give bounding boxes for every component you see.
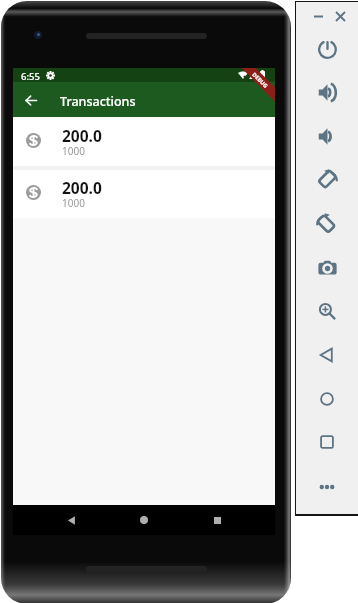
staticText: 200.0 xyxy=(62,177,102,198)
button[interactable]: Back xyxy=(56,505,86,535)
button[interactable]: More xyxy=(315,475,339,499)
button[interactable]: Home xyxy=(129,505,159,535)
button[interactable]: Recents xyxy=(202,505,232,535)
staticText: DEBUG xyxy=(251,71,270,89)
button[interactable]: 200.0 xyxy=(13,170,275,218)
button[interactable]: Minimize xyxy=(310,8,326,24)
staticText: 1000 xyxy=(62,196,85,210)
staticText: 6:55 xyxy=(21,70,40,83)
staticText: Transactions xyxy=(60,93,136,110)
button[interactable]: Rotate left xyxy=(315,212,339,236)
button[interactable]: Power xyxy=(315,37,339,61)
button[interactable]: Rotate right xyxy=(315,168,339,192)
button[interactable]: Screenshot xyxy=(315,256,339,280)
staticText: 200.0 xyxy=(62,125,102,146)
button[interactable]: Overview xyxy=(315,430,339,454)
button[interactable]: Close xyxy=(332,8,348,24)
button[interactable]: Volume down xyxy=(315,124,339,148)
button[interactable]: Back xyxy=(13,83,48,118)
button[interactable]: Zoom xyxy=(315,299,339,323)
button[interactable]: Home xyxy=(315,387,339,411)
button[interactable]: Back xyxy=(315,343,339,367)
staticText: 1000 xyxy=(62,144,85,158)
button[interactable]: Volume up xyxy=(315,80,339,104)
button[interactable]: 200.0 xyxy=(13,118,275,166)
